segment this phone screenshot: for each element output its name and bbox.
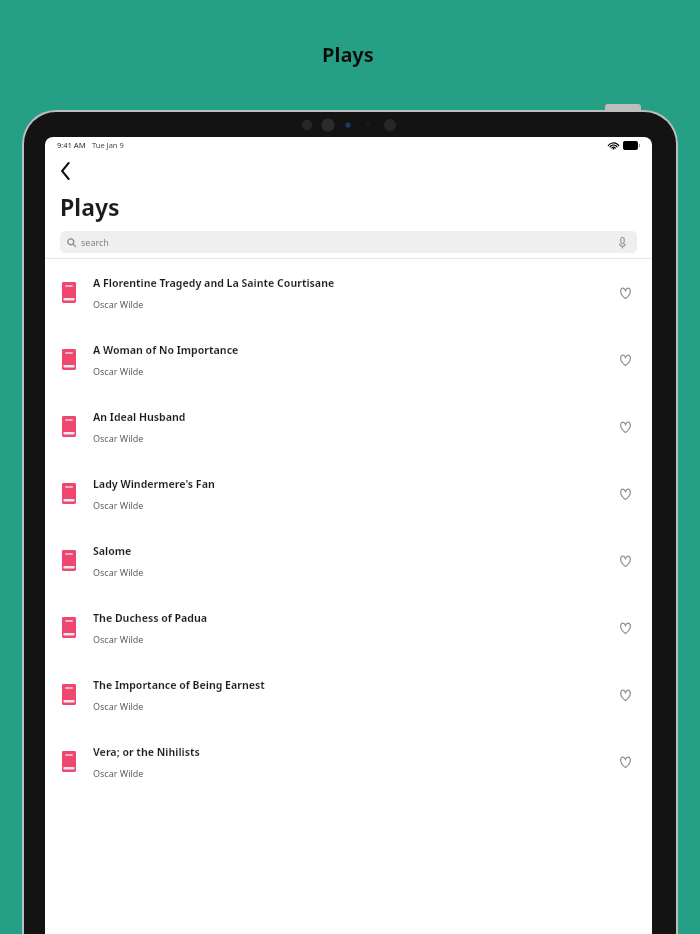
staticText: Oscar Wilde [93, 298, 144, 310]
button[interactable]: Favorite Salome [612, 548, 638, 574]
button[interactable]: A Florentine Tragedy and La Sainte Court… [45, 259, 652, 326]
staticText: Oscar Wilde [93, 432, 144, 444]
staticText: search [81, 236, 109, 248]
button[interactable]: The Importance of Being Earnest [45, 661, 652, 728]
staticText: A Florentine Tragedy and La Sainte Court… [93, 276, 335, 290]
button[interactable]: An Ideal Husband [45, 393, 652, 460]
button[interactable]: Favorite The Duchess of Padua [612, 615, 638, 641]
button[interactable]: Favorite Vera; or the Nihilists [612, 749, 638, 775]
button[interactable]: A Woman of No Importance [45, 326, 652, 393]
button[interactable]: Vera; or the Nihilists [45, 728, 652, 795]
button[interactable]: Back [51, 157, 79, 185]
staticText: Plays [322, 41, 374, 68]
staticText: Oscar Wilde [93, 499, 144, 511]
staticText: Salome [93, 544, 132, 558]
staticText: The Importance of Being Earnest [93, 678, 265, 692]
staticText: Vera; or the Nihilists [93, 745, 200, 759]
button[interactable]: Favorite Lady Windermere's Fan [612, 481, 638, 507]
staticText: Lady Windermere's Fan [93, 477, 215, 491]
staticText: Plays [60, 191, 120, 222]
staticText: Oscar Wilde [93, 566, 144, 578]
staticText: Oscar Wilde [93, 365, 144, 377]
staticText: Oscar Wilde [93, 700, 144, 712]
staticText: An Ideal Husband [93, 410, 186, 424]
button[interactable]: Favorite A Florentine Tragedy and La Sai… [612, 280, 638, 306]
button[interactable]: search [60, 231, 637, 253]
button[interactable]: Voice search [615, 235, 630, 250]
staticText: Tue Jan 9 [92, 140, 124, 150]
staticText: Oscar Wilde [93, 767, 144, 779]
button[interactable]: Favorite A Woman of No Importance [612, 347, 638, 373]
staticText: The Duchess of Padua [93, 611, 208, 625]
staticText: 9:41 AM [57, 140, 86, 150]
staticText: A Woman of No Importance [93, 343, 239, 357]
button[interactable]: The Duchess of Padua [45, 594, 652, 661]
button[interactable]: Lady Windermere's Fan [45, 460, 652, 527]
button[interactable]: Favorite An Ideal Husband [612, 414, 638, 440]
button[interactable]: Favorite The Importance of Being Earnest [612, 682, 638, 708]
staticText: Oscar Wilde [93, 633, 144, 645]
button[interactable]: Salome [45, 527, 652, 594]
